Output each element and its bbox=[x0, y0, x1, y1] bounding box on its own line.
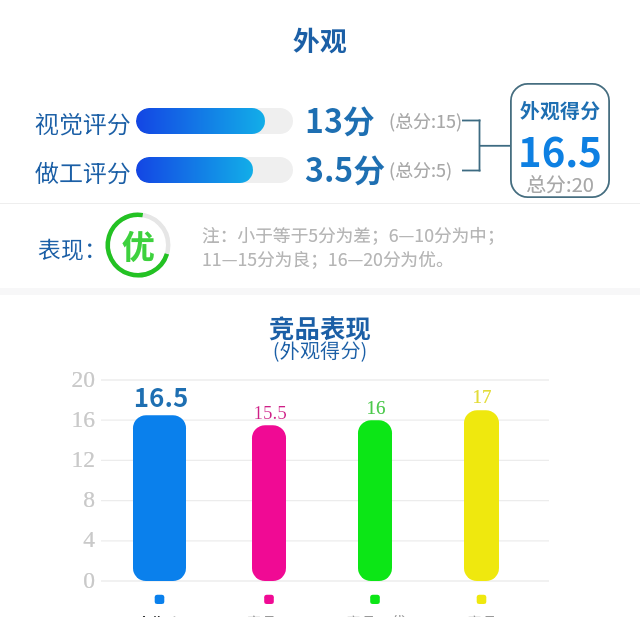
staticText: 13分 bbox=[305, 96, 375, 142]
staticText: 优 bbox=[105, 221, 171, 269]
staticText: 16 bbox=[53, 406, 95, 432]
staticText: 竞品表现 bbox=[0, 308, 640, 345]
staticText: 3.5分 bbox=[305, 145, 386, 191]
staticText: 外观得分 bbox=[510, 95, 610, 124]
staticText: (总分:5) bbox=[389, 156, 453, 182]
staticText: 竞品一 bbox=[245, 611, 293, 617]
staticText: 17 bbox=[459, 386, 505, 407]
staticText: (外观得分) bbox=[0, 335, 640, 364]
staticText: 注：小于等于5分为差；6—10分为中； bbox=[202, 221, 505, 247]
button[interactable]: 外观得分 bbox=[510, 83, 610, 198]
staticText: 总分:20 bbox=[510, 169, 610, 198]
staticText: 做工评分 bbox=[35, 154, 131, 189]
staticText: 竞品二代 bbox=[345, 611, 407, 617]
staticText: 11—15分为良；16—20分为优。 bbox=[202, 245, 454, 271]
staticText: 0 bbox=[53, 567, 95, 593]
button[interactable] bbox=[136, 157, 293, 183]
staticText: 16.5 bbox=[510, 121, 610, 179]
staticText: 15.5 bbox=[247, 402, 293, 423]
staticText: 4 bbox=[53, 526, 95, 552]
button[interactable] bbox=[136, 108, 293, 134]
staticText: 外观 bbox=[0, 20, 640, 59]
staticText: 视觉评分 bbox=[35, 105, 131, 140]
staticText: 20 bbox=[53, 366, 95, 392]
staticText: 16.5 bbox=[131, 377, 191, 415]
staticText: 本期车型 bbox=[129, 611, 191, 617]
staticText: (总分:15) bbox=[389, 107, 463, 133]
staticText: 表现： bbox=[38, 231, 107, 264]
staticText: 8 bbox=[53, 486, 95, 512]
staticText: 16 bbox=[353, 397, 399, 418]
button[interactable]: 表现 优 bbox=[105, 212, 171, 278]
staticText: 竞品 bbox=[466, 611, 498, 617]
staticText: 12 bbox=[53, 446, 95, 472]
